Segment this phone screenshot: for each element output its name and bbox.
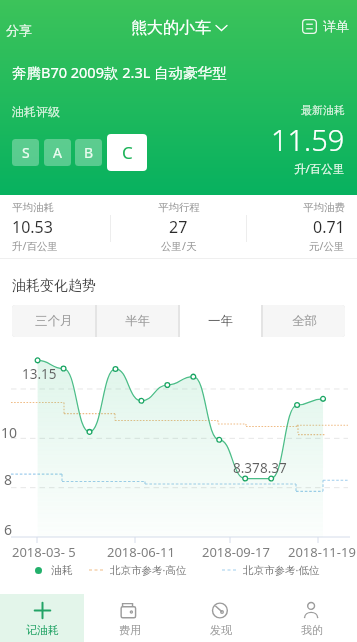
staticText: 8 [4,470,13,489]
staticText: B [84,143,94,162]
staticText: 北京市参考·低位 [243,563,320,577]
staticText: 2018-09-17 [202,543,270,561]
button[interactable]: A [44,139,71,166]
button[interactable]: 平均油费 [238,195,357,258]
button[interactable]: B [75,139,102,166]
staticText: 奔腾B70 2009款 2.3L 自动豪华型 [12,62,227,82]
staticText: 升/百公里 [12,239,58,253]
staticText: 半年 [125,313,150,329]
staticText: A [53,143,62,162]
button[interactable]: 平均油耗 [0,195,119,258]
staticText: 三个月 [35,313,73,329]
staticText: 分享 [6,22,32,38]
staticText: 详单 [323,18,349,34]
staticText: 8.37 [233,459,260,477]
other: 详单 [302,19,317,34]
staticText: 0.71 [313,216,345,238]
staticText: S [22,143,30,162]
staticText: 元/公里 [309,239,345,253]
staticText: 费用 [119,623,141,637]
staticText: 全部 [292,313,317,329]
staticText: 一年 [208,313,233,329]
staticText: 2018-06-11 [107,543,175,561]
button[interactable]: 分享 [0,16,38,44]
button[interactable]: 发现 [175,594,266,642]
staticText: 记油耗 [26,623,59,637]
staticText: 油耗 [51,563,73,577]
staticText: 最新油耗 [301,103,345,117]
button[interactable]: 三个月 [12,305,95,337]
staticText: 我的 [301,623,323,637]
staticText: 升/百公里 [294,161,345,177]
staticText: 平均油耗 [12,201,54,214]
button[interactable]: S [12,139,39,166]
staticText: C [122,141,133,164]
button[interactable]: 平均行程 [119,195,238,258]
staticText: 熊大的小车 [131,18,211,38]
staticText: 8.37 [260,459,287,477]
button[interactable]: 熊大的小车 [123,14,235,42]
button[interactable]: 记油耗 [0,594,84,642]
staticText: 13.15 [22,365,57,383]
button[interactable]: C [107,134,147,171]
staticText: 平均行程 [158,201,200,214]
button[interactable]: 全部 [263,305,345,337]
staticText: 27 [169,216,188,238]
button[interactable]: 一年 [180,305,261,337]
staticText: 发现 [210,623,232,637]
staticText: 公里/天 [161,239,197,253]
staticText: 6 [4,520,13,539]
staticText: 10 [1,423,18,442]
button[interactable]: 半年 [97,305,178,337]
staticText: 11.59 [271,120,345,159]
button[interactable]: 费用 [84,594,175,642]
staticText: 2018-11-19 [288,543,356,561]
staticText: 油耗评级 [12,104,60,119]
button[interactable]: 详单 [294,14,357,38]
staticText: 北京市参考·高位 [110,563,187,577]
button[interactable]: 我的 [266,594,357,642]
staticText: 10.53 [12,216,53,238]
staticText: 油耗变化趋势 [12,277,96,295]
staticText: 平均油费 [303,201,345,214]
staticText: 2018-03- 5 [12,543,76,561]
